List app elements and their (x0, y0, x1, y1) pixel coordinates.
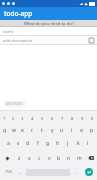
button[interactable]: w (9, 124, 18, 136)
staticText: . (75, 169, 77, 175)
staticText: b (57, 155, 61, 162)
button[interactable]: , (15, 165, 25, 179)
button[interactable]: y (47, 124, 57, 136)
button[interactable]: l (83, 136, 93, 151)
button[interactable]: a (4, 136, 13, 151)
staticText: t (41, 127, 43, 134)
button[interactable]: 6 (47, 112, 57, 124)
button[interactable]: name (0, 27, 97, 35)
button[interactable]: 7 (57, 112, 67, 124)
staticText: e (21, 127, 24, 134)
staticText: i (71, 127, 73, 134)
button[interactable]: h (53, 136, 63, 151)
staticText: u (60, 127, 64, 134)
button[interactable]: d (23, 136, 33, 151)
staticText: g (46, 140, 50, 147)
staticText: 8 (71, 116, 74, 121)
staticText: What do you need to do? (24, 21, 74, 27)
staticText: s (17, 140, 20, 147)
staticText: x (28, 155, 31, 162)
staticText: ADD TODO (6, 102, 23, 106)
button[interactable]: 3 (18, 112, 27, 124)
button[interactable]: 2 (9, 112, 18, 124)
button[interactable]: ?123 (1, 165, 15, 179)
staticText: y (51, 127, 54, 134)
button[interactable]: i (67, 124, 77, 136)
button[interactable]: Toggle complete (88, 37, 94, 43)
button[interactable]: m (74, 151, 84, 165)
staticText: k (77, 140, 80, 147)
button[interactable]: f (33, 136, 43, 151)
staticText: , (19, 169, 21, 175)
staticText: ?123 (5, 170, 12, 174)
staticText: f (37, 140, 39, 147)
button[interactable]: 4 (27, 112, 37, 124)
staticText: 1 (3, 116, 6, 121)
button[interactable]: c (34, 151, 44, 165)
button[interactable]: s (13, 136, 23, 151)
button[interactable]: 0 (87, 112, 97, 124)
staticText: n (67, 155, 71, 162)
staticText: m (77, 155, 82, 162)
button[interactable]: j (63, 136, 73, 151)
staticText: todo-app (4, 9, 33, 18)
staticText: 4 (31, 116, 34, 121)
staticText: q (3, 127, 7, 134)
staticText: r (31, 127, 34, 134)
staticText: l (87, 140, 89, 147)
button[interactable]: k (73, 136, 83, 151)
staticText: add description (3, 38, 88, 43)
button[interactable]: add description (0, 36, 97, 44)
staticText: 2 (12, 116, 15, 121)
button[interactable]: 9 (77, 112, 87, 124)
staticText: 0 (91, 116, 94, 121)
button[interactable]: q (0, 124, 9, 136)
staticText: c (38, 155, 41, 162)
button[interactable]: b (54, 151, 64, 165)
staticText: j (67, 140, 69, 147)
button[interactable]: Backspace (84, 151, 97, 165)
button[interactable]: u (57, 124, 67, 136)
staticText: h (56, 140, 60, 147)
button[interactable]: z (14, 151, 24, 165)
button[interactable]: g (43, 136, 53, 151)
button[interactable]: p (87, 124, 97, 136)
staticText: d (26, 140, 30, 147)
button[interactable]: v (44, 151, 54, 165)
staticText: name (3, 29, 94, 34)
button[interactable]: 1 (0, 112, 9, 124)
button[interactable]: . (71, 165, 81, 179)
button[interactable]: o (77, 124, 87, 136)
staticText: 7 (61, 116, 64, 121)
staticText: v (48, 155, 51, 162)
button[interactable]: t (37, 124, 47, 136)
button[interactable]: Shift (0, 151, 14, 165)
staticText: p (90, 127, 94, 134)
staticText: 3 (21, 116, 24, 121)
staticText: 6 (51, 116, 54, 121)
staticText: a (7, 140, 10, 147)
button[interactable]: r (27, 124, 37, 136)
button[interactable]: x (24, 151, 34, 165)
button[interactable]: e (18, 124, 27, 136)
button[interactable]: n (64, 151, 74, 165)
staticText: o (80, 127, 84, 134)
staticText: 9 (81, 116, 84, 121)
staticText: w (12, 127, 16, 134)
staticText: 5 (41, 116, 44, 121)
button[interactable]: ADD TODO (3, 101, 26, 107)
button[interactable]: 5 (37, 112, 47, 124)
button[interactable]: 8 (67, 112, 77, 124)
button[interactable]: Enter (85, 168, 93, 176)
staticText: z (18, 155, 21, 162)
